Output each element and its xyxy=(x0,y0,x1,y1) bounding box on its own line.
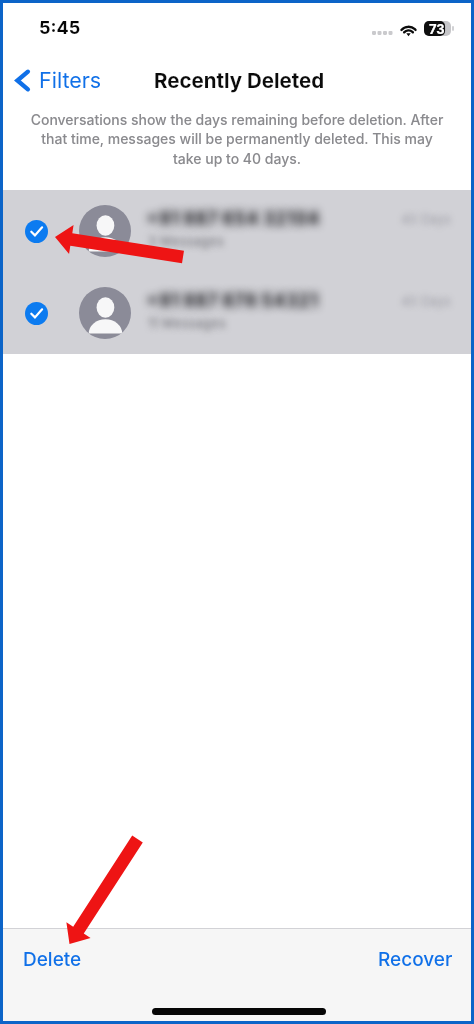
staticText: 5:45 xyxy=(39,17,81,39)
button[interactable]: Recover xyxy=(364,929,471,981)
staticText: Recently Deleted xyxy=(154,68,325,93)
other: Selected xyxy=(25,220,48,243)
staticText: Filters xyxy=(39,67,102,93)
staticText: 73 xyxy=(429,21,445,36)
button[interactable]: Selected xyxy=(3,190,471,272)
button[interactable]: Selected xyxy=(3,272,471,354)
button[interactable]: Filters xyxy=(3,62,110,98)
button[interactable]: Delete xyxy=(3,929,96,981)
staticText: Conversations show the days remaining be… xyxy=(28,111,446,167)
other: Selected xyxy=(25,302,48,325)
